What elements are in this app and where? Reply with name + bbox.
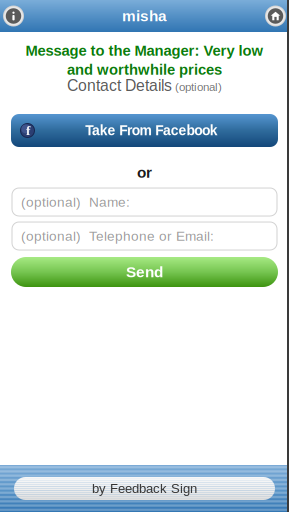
staticText: or xyxy=(137,164,152,181)
button[interactable]: by Feedback Sign xyxy=(0,477,289,500)
button[interactable]: Home xyxy=(262,0,289,31)
staticText: Message to the Manager: Very low xyxy=(25,42,263,59)
staticText: (optional) Telephone or Email: xyxy=(21,228,214,244)
button[interactable]: Send xyxy=(0,257,289,287)
button[interactable]: f xyxy=(0,114,289,147)
staticText: Send xyxy=(126,263,163,280)
staticText: Contact Details xyxy=(67,77,172,94)
staticText: (optional) xyxy=(175,81,222,93)
staticText: and worthwhile prices xyxy=(67,61,222,78)
staticText: (optional) Name: xyxy=(21,194,130,210)
staticText: misha xyxy=(122,7,167,24)
staticText: Take From Facebook xyxy=(85,123,218,138)
staticText: by Feedback Sign xyxy=(92,481,197,496)
staticText: f xyxy=(26,123,30,138)
button[interactable]: Info xyxy=(0,0,27,31)
